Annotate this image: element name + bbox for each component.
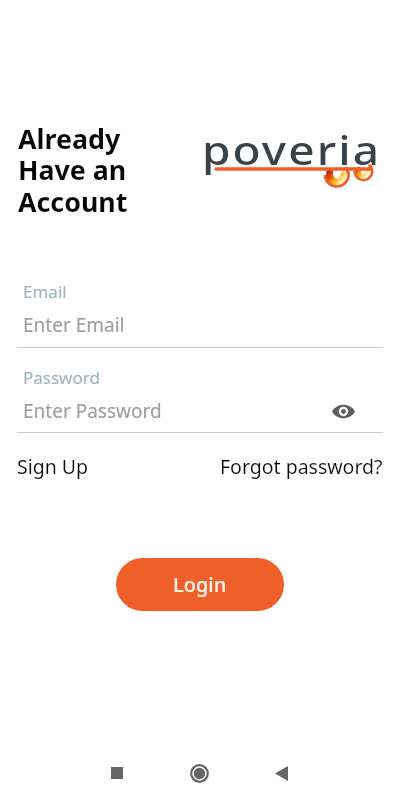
button[interactable]: Recent apps bbox=[98, 754, 136, 792]
staticText: Sign Up bbox=[17, 453, 89, 480]
staticText: Already Have an Account bbox=[18, 120, 128, 220]
staticText: Email bbox=[23, 280, 67, 303]
button[interactable]: Login bbox=[116, 558, 284, 611]
button[interactable]: Forgot password? bbox=[220, 453, 383, 480]
button[interactable] bbox=[17, 274, 383, 349]
staticText: Password bbox=[23, 366, 100, 389]
button[interactable]: Home bbox=[180, 754, 218, 792]
button[interactable]: Sign Up bbox=[17, 453, 89, 480]
other: poveria logo bbox=[202, 132, 400, 190]
staticText: Enter Password bbox=[23, 398, 162, 424]
staticText: Login bbox=[173, 571, 227, 598]
button[interactable]: Back bbox=[262, 754, 300, 792]
staticText: poveria bbox=[202, 122, 381, 176]
button[interactable]: Show password bbox=[327, 395, 359, 427]
button[interactable] bbox=[17, 360, 383, 434]
staticText: Forgot password? bbox=[220, 453, 383, 480]
staticText: Enter Email bbox=[23, 312, 125, 338]
